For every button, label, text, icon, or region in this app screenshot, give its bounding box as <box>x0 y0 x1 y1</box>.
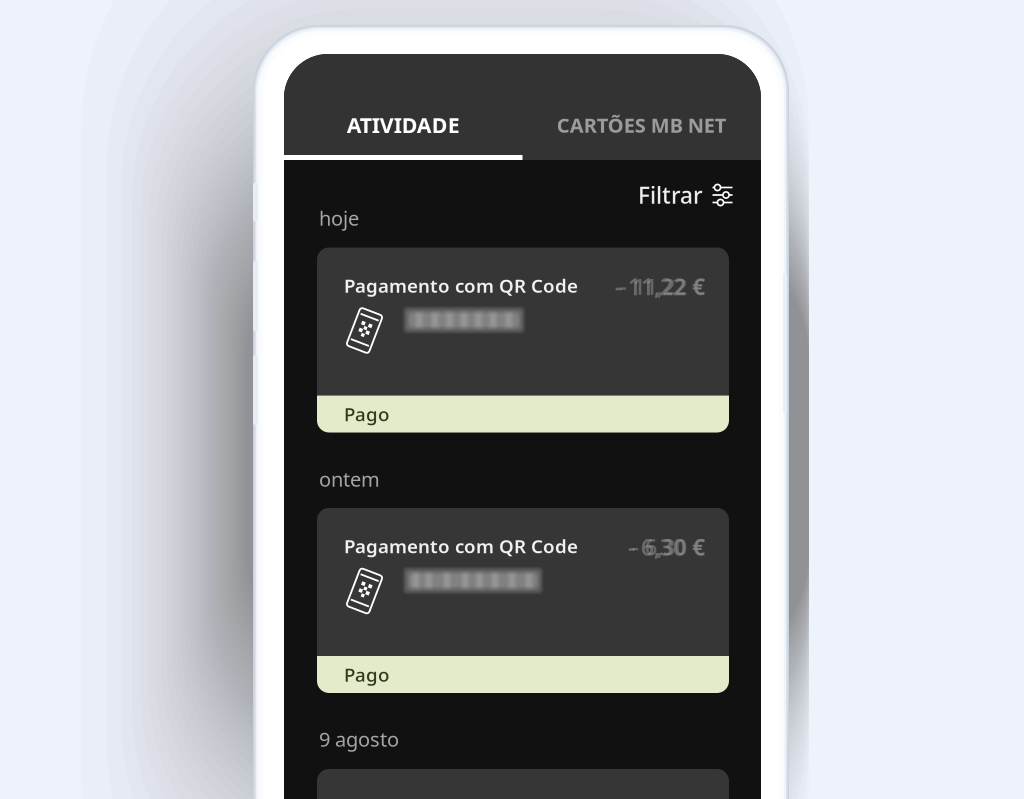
staticText: hoje <box>319 205 359 231</box>
staticText: ontem <box>319 466 380 492</box>
staticText: - 6,30 € <box>628 532 705 562</box>
button[interactable]: CARTÕES MB NET <box>522 72 761 178</box>
staticText: - 11,22 € <box>615 271 705 301</box>
staticText: - 11,22 € <box>615 271 705 301</box>
staticText: Pagamento com QR Code <box>344 273 578 298</box>
staticText: Pagamento com QR Code <box>344 534 578 558</box>
staticText: 9 agosto <box>319 726 399 752</box>
staticText: CARTÕES MB NET <box>557 112 727 138</box>
staticText: - 6,30 € <box>628 532 705 562</box>
staticText: - 6,30 € <box>632 533 705 561</box>
staticText: ATIVIDADE <box>347 111 460 139</box>
staticText: - 11,22 € <box>620 272 705 301</box>
staticText: Filtrar <box>638 180 703 210</box>
staticText: Pago <box>344 402 389 426</box>
button[interactable]: Filtrar <box>638 182 734 208</box>
staticText: Pago <box>344 662 389 687</box>
button[interactable]: Pagamento com QR Code <box>317 508 729 693</box>
button[interactable]: ATIVIDADE <box>284 72 522 178</box>
button[interactable]: Pagamento com QR Code <box>317 247 729 432</box>
